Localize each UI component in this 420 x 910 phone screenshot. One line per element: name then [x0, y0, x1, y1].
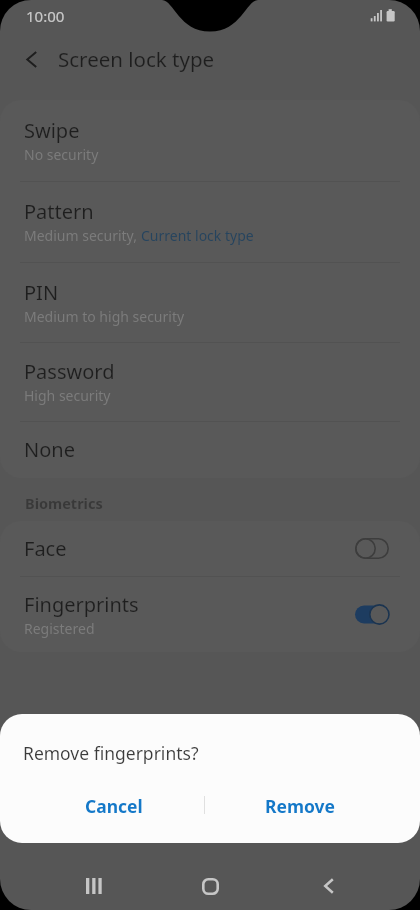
staticText: None — [24, 436, 75, 463]
staticText: Screen lock type — [58, 45, 215, 73]
button[interactable]: Navigate up — [12, 39, 52, 79]
button[interactable]: Cancel — [21, 786, 207, 826]
button[interactable]: Home — [180, 856, 241, 910]
staticText: Pattern — [24, 198, 94, 225]
staticText: Medium to high security — [24, 307, 185, 326]
staticText: No security — [24, 145, 99, 164]
button[interactable]: Remove — [207, 786, 393, 826]
staticText: Remove — [265, 794, 336, 818]
staticText: Password — [24, 358, 115, 385]
staticText: High security — [24, 386, 111, 405]
button[interactable]: Swipe — [0, 100, 420, 181]
staticText: Current lock type — [141, 226, 254, 245]
button[interactable]: PIN — [0, 262, 420, 342]
staticText: Registered — [24, 619, 95, 638]
staticText: Face — [24, 535, 67, 562]
staticText: 10:00 — [26, 6, 65, 26]
button[interactable]: None — [0, 421, 420, 478]
button[interactable]: Password — [0, 342, 420, 421]
staticText: Remove fingerprints? — [23, 741, 199, 765]
button[interactable]: Recent apps — [63, 856, 124, 910]
button[interactable]: Face — [0, 521, 420, 576]
staticText: Medium security, — [24, 226, 141, 245]
button[interactable]: Fingerprints — [0, 576, 420, 652]
staticText: Swipe — [24, 117, 80, 144]
staticText: Biometrics — [25, 493, 103, 513]
button[interactable]: Back — [298, 856, 359, 910]
button[interactable]: Pattern — [0, 181, 420, 262]
staticText: Fingerprints — [24, 591, 139, 618]
staticText: Cancel — [85, 794, 143, 818]
staticText: PIN — [24, 279, 59, 306]
